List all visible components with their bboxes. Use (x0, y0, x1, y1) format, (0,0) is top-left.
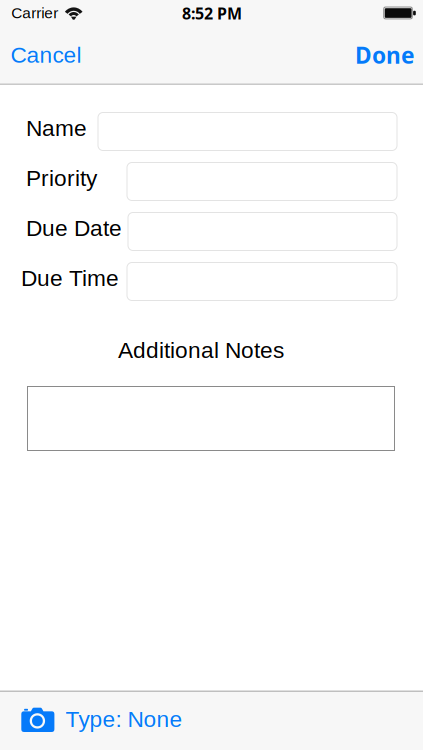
staticText: Done (355, 40, 415, 70)
staticText: Priority (26, 165, 97, 191)
staticText: Due Time (21, 265, 119, 291)
staticText: 8:52 PM (182, 2, 242, 24)
staticText: Type: None (65, 706, 182, 732)
button[interactable]: Type: None (0, 692, 200, 750)
staticText: Due Date (26, 215, 122, 241)
button[interactable]: Cancel (10, 33, 94, 77)
staticText: Carrier (11, 4, 58, 21)
staticText: Cancel (10, 42, 81, 68)
staticText: Name (26, 115, 87, 141)
staticText: Additional Notes (118, 337, 284, 363)
button[interactable]: Done (353, 33, 415, 77)
